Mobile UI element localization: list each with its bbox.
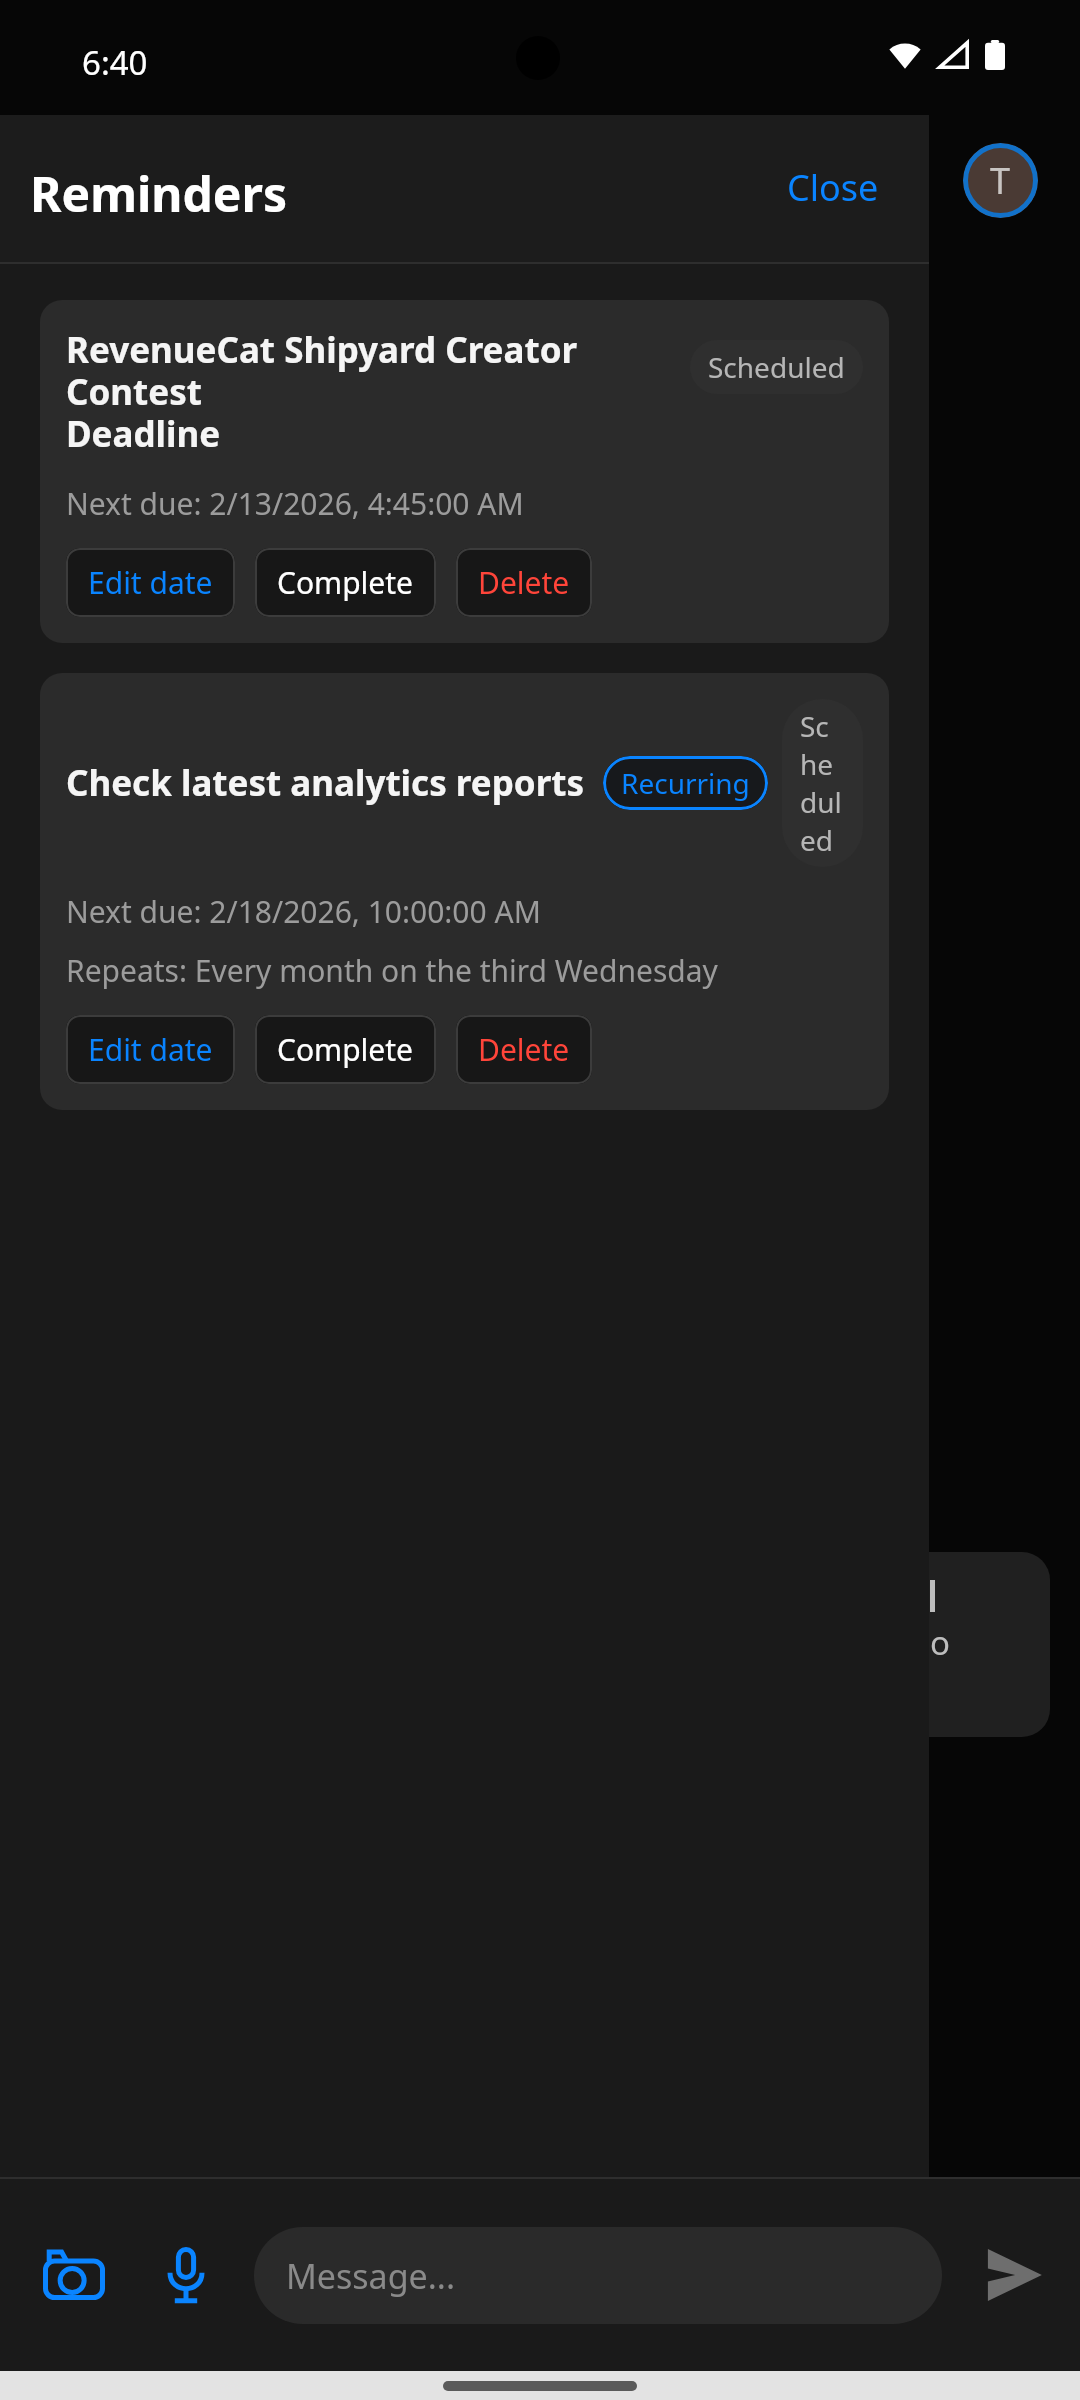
button[interactable]: RevenueCat Shipyard Creator Contest Dead… <box>40 300 889 643</box>
button[interactable]: Edit date <box>66 548 235 617</box>
button[interactable]: Recurring <box>603 756 768 810</box>
button[interactable]: Send <box>966 2227 1062 2323</box>
staticText: 6:40 <box>82 40 148 85</box>
staticText: Edit date <box>88 1029 213 1070</box>
staticText: Message... <box>286 2253 456 2299</box>
button[interactable]: Scheduled <box>690 340 863 394</box>
staticText: Next due: 2/13/2026, 4:45:00 AM <box>66 483 524 524</box>
staticText: Check latest analytics reports <box>66 759 585 807</box>
button[interactable]: Close <box>775 153 891 222</box>
staticText: Next due: 2/18/2026, 10:00:00 AM <box>66 891 541 932</box>
button[interactable]: Delete <box>456 1015 592 1084</box>
staticText: Close <box>787 163 879 212</box>
button[interactable]: Message... <box>254 2227 942 2324</box>
button[interactable]: Edit date <box>66 1015 235 1084</box>
staticText: Delete <box>478 562 570 603</box>
staticText: Complete <box>277 562 414 603</box>
button[interactable]: Check latest analytics reports <box>40 673 889 1110</box>
button[interactable]: Delete <box>456 548 592 617</box>
button[interactable]: Camera <box>30 2231 118 2319</box>
staticText: Recurring <box>621 764 750 802</box>
staticText: Complete <box>277 1029 414 1070</box>
button[interactable]: Complete <box>255 1015 436 1084</box>
button[interactable]: Scheduled <box>782 699 863 867</box>
staticText: Delete <box>478 1029 570 1070</box>
staticText: T <box>990 156 1011 205</box>
staticText: Scheduled <box>708 348 845 386</box>
staticText: Edit date <box>88 562 213 603</box>
staticText: o <box>930 1620 950 1665</box>
button[interactable]: Profile <box>963 143 1038 218</box>
staticText: Repeats: Every month on the third Wednes… <box>66 950 718 991</box>
button[interactable]: Voice message <box>146 2235 226 2315</box>
staticText: Reminders <box>30 161 288 226</box>
staticText: Scheduled <box>800 707 845 859</box>
button[interactable]: Complete <box>255 548 436 617</box>
staticText: RevenueCat Shipyard Creator Contest Dead… <box>66 326 666 457</box>
